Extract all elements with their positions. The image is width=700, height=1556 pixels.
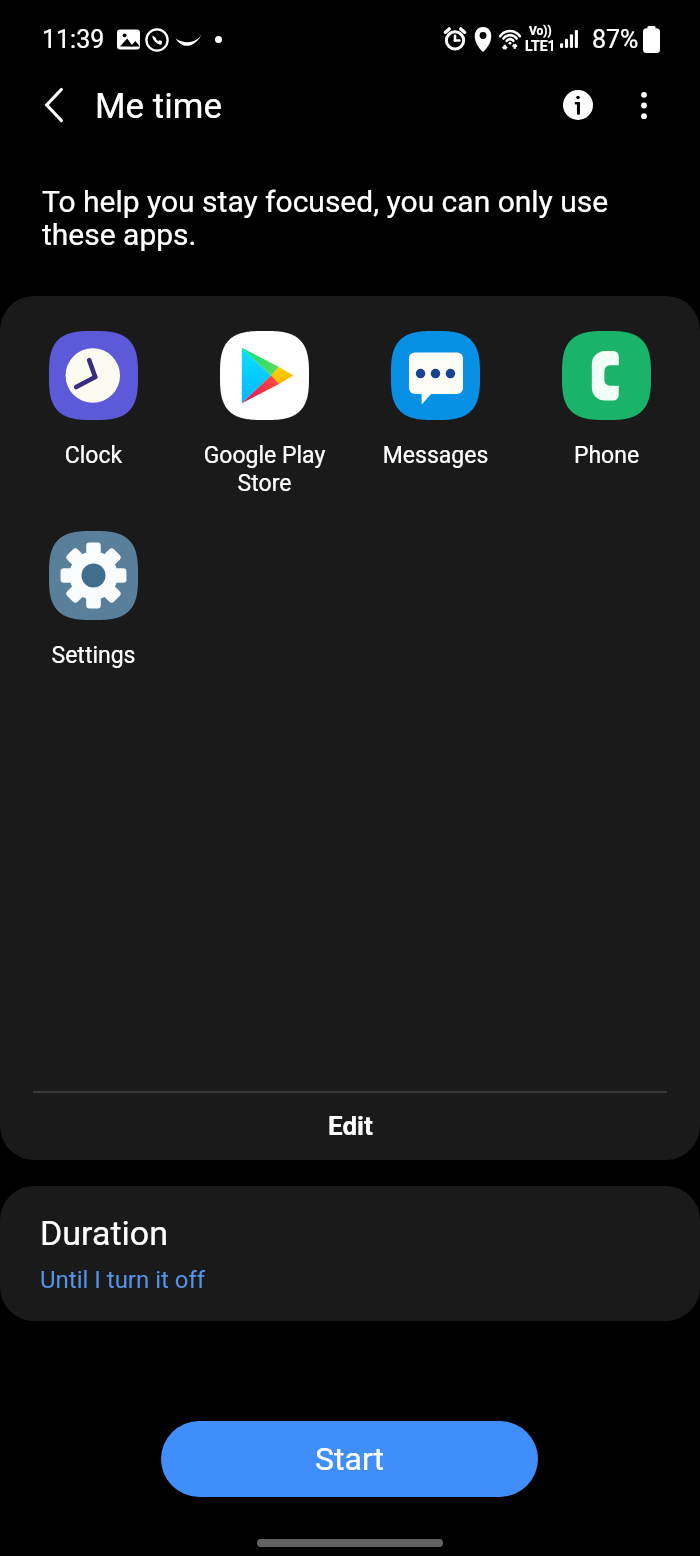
- staticText: 11:39: [42, 25, 105, 54]
- button[interactable]: Messages: [350, 331, 521, 469]
- staticText: 87%: [592, 25, 639, 54]
- staticText: LTE1: [525, 38, 556, 54]
- staticText: Edit: [328, 1111, 373, 1141]
- staticText: Settings: [8, 642, 179, 669]
- button[interactable]: Clock: [8, 331, 179, 469]
- button[interactable]: Start: [161, 1421, 538, 1497]
- button[interactable]: Edit: [0, 1092, 700, 1160]
- staticText: Phone: [521, 442, 692, 469]
- staticText: Me time: [95, 86, 223, 127]
- staticText: Duration: [40, 1213, 168, 1253]
- staticText: Until I turn it off: [40, 1266, 206, 1294]
- button[interactable]: Google Play Store: [179, 331, 350, 497]
- button[interactable]: Settings: [8, 531, 179, 669]
- staticText: Start: [315, 1440, 384, 1478]
- staticText: Clock: [8, 442, 179, 469]
- button[interactable]: Phone: [521, 331, 692, 469]
- staticText: Messages: [350, 442, 521, 469]
- button[interactable]: More options: [616, 77, 672, 133]
- button[interactable]: Information: [550, 77, 606, 133]
- button[interactable]: Duration: [0, 1186, 700, 1321]
- button[interactable]: Back: [29, 77, 85, 133]
- staticText: Vo)): [529, 24, 552, 38]
- staticText: Google Play Store: [179, 442, 350, 497]
- staticText: To help you stay focused, you can only u…: [42, 184, 660, 252]
